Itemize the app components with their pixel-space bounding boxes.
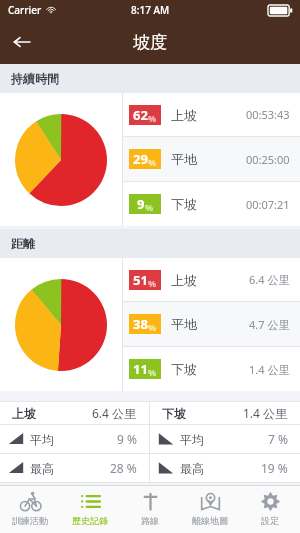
staticText: 7 % xyxy=(268,431,288,447)
button[interactable]: 38 xyxy=(123,302,300,346)
staticText: 8:17 AM xyxy=(131,3,170,17)
staticText: 00:25:00 xyxy=(246,152,290,167)
staticText: 上坡 xyxy=(12,406,36,421)
staticText: % xyxy=(148,156,157,168)
staticText: 9 % xyxy=(117,431,137,447)
staticText: 離線地圖 xyxy=(192,515,228,526)
staticText: 51 xyxy=(133,271,148,289)
staticText: Carrier xyxy=(8,3,42,17)
staticText: 19 % xyxy=(261,460,288,476)
staticText: 平均 xyxy=(180,432,204,447)
staticText: 4.7 公里 xyxy=(249,317,290,332)
staticText: 訓練活動 xyxy=(12,515,48,526)
staticText: % xyxy=(148,112,157,124)
staticText: 持續時間 xyxy=(11,71,59,86)
staticText: % xyxy=(148,321,157,333)
staticText: 1.4 公里 xyxy=(249,362,290,377)
button[interactable]: 9 xyxy=(123,182,300,226)
staticText: 歷史記錄 xyxy=(72,515,108,526)
staticText: % xyxy=(145,201,154,213)
staticText: % xyxy=(148,366,157,378)
staticText: 最高 xyxy=(180,461,204,476)
staticText: 1.4 公里 xyxy=(243,405,288,421)
staticText: 坡度 xyxy=(133,32,167,53)
button[interactable]: 離線地圖 xyxy=(180,486,240,533)
staticText: 62 xyxy=(133,106,148,124)
staticText: 最高 xyxy=(30,461,54,476)
button[interactable]: 路線 xyxy=(120,486,180,533)
button[interactable]: 設定 xyxy=(240,486,300,533)
button[interactable]: 訓練活動 xyxy=(0,486,60,533)
button[interactable]: 11 xyxy=(123,347,300,391)
staticText: 6.4 公里 xyxy=(92,405,137,421)
staticText: 28 % xyxy=(110,460,137,476)
button[interactable]: 51 xyxy=(123,258,300,301)
staticText: 上坡 xyxy=(171,272,197,288)
staticText: 9 xyxy=(137,195,145,213)
button[interactable]: 29 xyxy=(123,137,300,181)
staticText: 上坡 xyxy=(171,107,197,123)
staticText: 下坡 xyxy=(171,196,197,212)
staticText: 11 xyxy=(133,360,148,378)
staticText: 38 xyxy=(133,315,148,333)
button[interactable]: 歷史記錄 xyxy=(60,486,120,533)
staticText: % xyxy=(148,277,157,289)
staticText: 6.4 公里 xyxy=(249,272,290,287)
staticText: 距離 xyxy=(11,236,35,251)
staticText: 平地 xyxy=(171,151,197,167)
staticText: 00:07:21 xyxy=(246,197,290,212)
staticText: 下坡 xyxy=(162,406,186,421)
staticText: 29 xyxy=(133,150,148,168)
button[interactable]: 62 xyxy=(123,93,300,136)
staticText: 路線 xyxy=(141,515,159,526)
staticText: 00:53:43 xyxy=(246,107,290,122)
staticText: 平地 xyxy=(171,316,197,332)
staticText: 下坡 xyxy=(171,361,197,377)
button[interactable]: Back xyxy=(0,20,44,64)
staticText: 設定 xyxy=(261,515,279,526)
staticText: 平均 xyxy=(30,432,54,447)
